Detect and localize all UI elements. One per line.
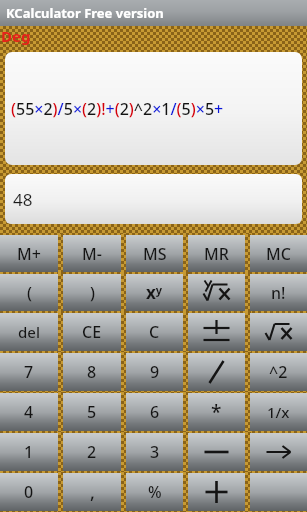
button[interactable]: % (126, 473, 183, 511)
button[interactable]: 9 (126, 353, 183, 391)
button[interactable]: MR (188, 235, 245, 272)
button[interactable]: Square root of x (250, 313, 307, 351)
staticText: % (148, 481, 162, 503)
staticText: * (211, 399, 222, 425)
staticText: del (18, 322, 40, 342)
staticText: 7 (24, 361, 34, 383)
staticText: 1/x (267, 402, 290, 422)
button[interactable]: C (126, 313, 183, 351)
button[interactable]: Plus minus (188, 313, 245, 351)
staticText: 4 (24, 401, 34, 423)
staticText: ^2 (269, 361, 288, 383)
staticText: 9 (150, 361, 160, 383)
button[interactable]: n! (250, 274, 307, 311)
button[interactable]: MS (126, 235, 183, 272)
staticText: 2 (87, 441, 97, 463)
button[interactable]: 0 (0, 473, 58, 511)
button[interactable]: ) (63, 274, 121, 311)
button[interactable]: xy (126, 274, 183, 311)
staticText: MR (204, 243, 229, 265)
staticText: Deg (1, 26, 31, 46)
button[interactable]: * (188, 393, 245, 431)
button[interactable]: Minus (188, 433, 245, 471)
staticText: ( (27, 282, 32, 304)
button[interactable]: 7 (0, 353, 58, 391)
staticText: M- (82, 243, 102, 265)
staticText: , (90, 480, 95, 505)
button[interactable]: 1/x (250, 393, 307, 431)
staticText: 5 (87, 401, 97, 423)
button[interactable]: y-th root of x (188, 274, 245, 311)
staticText: 8 (87, 361, 97, 383)
staticText: 1 (24, 441, 34, 463)
button[interactable]: ( (0, 274, 58, 311)
button[interactable]: ^2 (250, 353, 307, 391)
button[interactable]: M+ (0, 235, 58, 272)
button[interactable]: , (63, 473, 121, 511)
staticText: ) (90, 282, 95, 304)
button[interactable]: 1 (0, 433, 58, 471)
button[interactable]: 48 (5, 174, 302, 224)
staticText: M+ (17, 243, 41, 265)
staticText: n! (271, 282, 286, 304)
staticText: (55×2)/5×(2)!+(2)^2×1/(5)×5+ (11, 98, 224, 120)
staticText: 48 (13, 188, 33, 211)
button[interactable]: 5 (63, 393, 121, 431)
staticText: xy (146, 281, 163, 304)
button[interactable]: 2 (63, 433, 121, 471)
button[interactable]: del (0, 313, 58, 351)
button[interactable]: Arrow right (250, 433, 307, 471)
button[interactable]: 4 (0, 393, 58, 431)
button[interactable]: M- (63, 235, 121, 272)
staticText: CE (82, 321, 102, 343)
button[interactable]: Plus (188, 473, 245, 511)
staticText: MS (143, 243, 167, 265)
button[interactable]: CE (63, 313, 121, 351)
button[interactable]: (55×2)/5×(2)!+(2)^2×1/(5)×5+ (5, 52, 302, 165)
button[interactable]: Divide (188, 353, 245, 391)
staticText: 0 (24, 481, 34, 503)
staticText: C (149, 321, 160, 343)
button[interactable]: 6 (126, 393, 183, 431)
button[interactable]: MC (250, 235, 307, 272)
button[interactable]: Equals (250, 473, 307, 511)
staticText: MC (266, 243, 291, 265)
staticText: 6 (150, 401, 160, 423)
staticText: 3 (150, 441, 160, 463)
staticText: KCalculator Free version (6, 4, 164, 22)
button[interactable]: 8 (63, 353, 121, 391)
button[interactable]: 3 (126, 433, 183, 471)
